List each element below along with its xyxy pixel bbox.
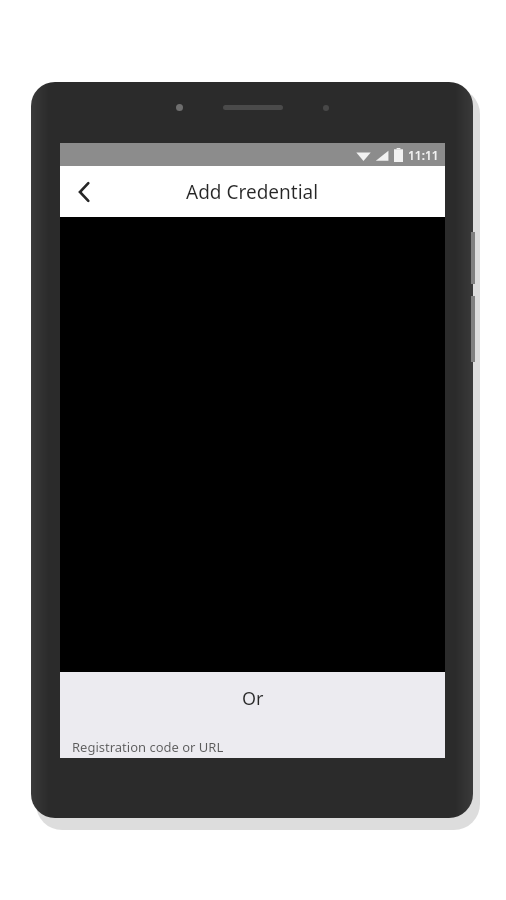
button[interactable]: Back (60, 168, 108, 216)
staticText: Add Credential (186, 179, 319, 205)
staticText: Or (242, 686, 264, 711)
staticText: Registration code or URL (72, 738, 224, 756)
button[interactable]: Registration code or URL (60, 736, 445, 758)
staticText: 11:11 (408, 147, 439, 163)
